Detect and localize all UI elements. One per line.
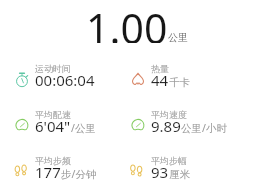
staticText: 平均速度 bbox=[151, 109, 187, 120]
staticText: 千卡 bbox=[169, 76, 190, 89]
staticText: 平均步频 bbox=[35, 155, 71, 166]
staticText: 44 bbox=[151, 70, 169, 90]
staticText: 平均配速 bbox=[35, 109, 71, 120]
staticText: 公里/小时 bbox=[181, 121, 227, 135]
staticText: 9.89 bbox=[151, 116, 181, 136]
staticText: /公里 bbox=[71, 121, 96, 135]
staticText: 平均步幅 bbox=[151, 155, 187, 166]
button[interactable]: 平均步幅 bbox=[127, 155, 254, 186]
button[interactable]: 热量 bbox=[127, 63, 254, 94]
staticText: 热量 bbox=[151, 63, 169, 74]
button[interactable]: 平均速度 bbox=[127, 109, 254, 140]
button[interactable]: 平均步频 bbox=[0, 155, 127, 186]
staticText: 运动时间 bbox=[35, 63, 71, 74]
button[interactable]: 运动时间 bbox=[0, 63, 127, 94]
staticText: 厘米 bbox=[169, 168, 190, 181]
staticText: 00:06:04 bbox=[35, 70, 95, 90]
staticText: 177 bbox=[35, 162, 61, 182]
staticText: 6'04" bbox=[35, 116, 71, 136]
staticText: 93 bbox=[151, 162, 169, 182]
button[interactable]: 平均配速 bbox=[0, 109, 127, 140]
staticText: 步/分钟 bbox=[61, 167, 97, 181]
staticText: 1.00 bbox=[86, 0, 168, 43]
staticText: 公里 bbox=[168, 31, 188, 44]
